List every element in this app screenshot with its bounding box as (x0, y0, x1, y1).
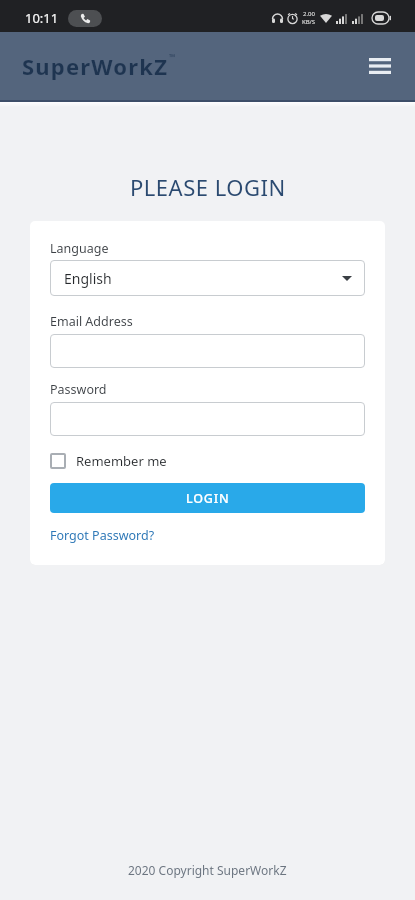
staticText: English (64, 269, 112, 288)
staticText: Email Address (50, 313, 133, 330)
staticText: PLEASE LOGIN (130, 172, 286, 202)
staticText: 2.00 (303, 10, 315, 18)
staticText: KB/S (302, 18, 316, 26)
staticText: LOGIN (186, 490, 230, 507)
button[interactable]: Remember me (50, 452, 167, 470)
staticText: Password (50, 381, 107, 398)
button[interactable]: Forgot Password? (50, 527, 155, 544)
button[interactable] (50, 334, 365, 368)
staticText: 2020 Copyright SuperWorkZ (128, 862, 287, 878)
staticText: SuperWorkZ (22, 51, 169, 81)
button[interactable]: LOGIN (50, 483, 365, 513)
button[interactable] (363, 49, 397, 83)
staticText: Remember me (76, 452, 167, 470)
button[interactable]: English (50, 260, 365, 296)
staticText: Language (50, 240, 109, 257)
button[interactable] (50, 402, 365, 436)
staticText: ™ (169, 51, 176, 62)
staticText: 10:11 (25, 9, 59, 27)
